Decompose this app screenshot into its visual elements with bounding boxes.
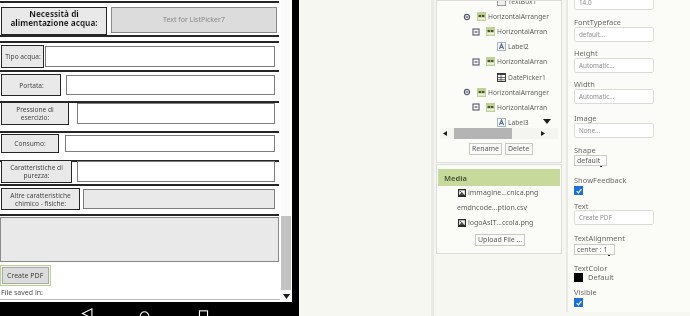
button[interactable]: Recent apps [197,308,210,316]
button[interactable] [83,189,275,209]
staticText: Width [574,79,595,89]
staticText: Media [444,173,468,183]
staticText: emdncode...ption.csv [457,203,527,213]
button[interactable]: Collapse [473,104,479,110]
staticText: HorizontalArran [497,57,548,66]
button[interactable]: Caratteristiche di purezza: [1,160,72,183]
staticText: HorizontalArranger [488,88,549,97]
button[interactable]: TextBox1 [497,0,537,9]
staticText: File saved in: [1,288,43,298]
button[interactable]: HorizontalArran [486,54,548,69]
button[interactable]: Toggle [574,186,583,195]
staticText: TextBox1 [508,0,537,6]
staticText: None... [579,126,601,135]
button[interactable]: Create PDF [574,210,654,225]
staticText: TextColor [574,263,608,273]
staticText: Text [574,201,589,211]
staticText: TextAlignment [574,233,625,243]
button[interactable]: Delete [505,143,533,155]
button[interactable]: Collapse [464,14,470,20]
button[interactable] [66,75,275,95]
button[interactable]: Upload File ... [475,234,525,246]
staticText: Automatic... [579,92,615,101]
staticText: Text for ListPicker7 [163,15,225,25]
staticText: Rename [472,144,500,154]
button[interactable]: Altre caratteristiche chimico - fisiche: [1,188,80,210]
button[interactable] [0,217,279,262]
button[interactable]: HorizontalArran [486,100,548,115]
staticText: default [577,156,601,166]
button[interactable]: Collapse [473,59,479,65]
button[interactable]: Create PDF [2,267,49,284]
staticText: Height [574,48,598,58]
button[interactable]: Tipo acqua: [1,45,44,68]
staticText: Shape [574,145,596,155]
button[interactable]: HorizontalArranger [477,9,549,24]
button[interactable]: Scroll down [281,290,291,302]
staticText: Consumo: [14,139,46,148]
button[interactable] [77,161,275,182]
staticText: Portata: [19,81,44,90]
button[interactable]: Pressione di esercizio: [1,102,69,125]
button[interactable]: default... [574,27,654,42]
button[interactable]: logoAsIT...ccola.png [458,218,534,228]
button[interactable]: Back [81,308,95,316]
button[interactable]: immagine...cnica.png [458,188,539,198]
button[interactable]: HorizontalArranger [477,85,549,100]
staticText: logoAsIT...ccola.png [468,218,534,228]
staticText: ShowFeedback [574,175,627,185]
button[interactable]: 14.0 [574,0,654,10]
button[interactable]: Default [574,272,614,282]
staticText: Caratteristiche di purezza: [10,163,63,180]
staticText: Tipo acqua: [5,52,41,61]
button[interactable]: Collapse [473,29,479,35]
button[interactable]: Consumo: [1,134,59,153]
button[interactable]: Label2 [497,39,529,54]
button[interactable]: Automatic... [574,89,654,104]
staticText: Default [588,272,614,282]
staticText: Upload File ... [478,235,523,245]
staticText: Delete [508,144,530,154]
staticText: Label2 [508,42,529,51]
staticText: immagine...cnica.png [468,188,539,198]
staticText: center : 1 [577,245,608,255]
staticText: HorizontalArranger [488,12,549,21]
staticText: Image [574,113,597,123]
button[interactable]: Collapse [464,89,470,95]
button[interactable]: Toggle [574,298,583,307]
staticText: Necessità di alimentazione acqua: [10,8,98,28]
staticText: Automatic... [579,61,615,70]
staticText: 14.0 [579,0,592,7]
button[interactable]: default [574,155,607,166]
staticText: HorizontalArran [497,27,548,36]
staticText: Create PDF [7,271,44,281]
button[interactable] [45,46,275,67]
button[interactable]: center : 1 [574,244,615,255]
button[interactable]: Necessità di alimentazione acqua: [1,7,107,35]
staticText: DatePicker1 [508,73,546,82]
button[interactable] [77,103,275,124]
button[interactable]: DatePicker1 [497,70,546,85]
button[interactable]: Home [138,308,151,316]
staticText: default... [579,30,605,39]
button[interactable]: Label3 [497,115,529,130]
button[interactable] [440,128,558,139]
button[interactable]: Automatic... [574,58,654,73]
button[interactable]: Expand [542,116,552,126]
staticText: Label3 [508,118,529,127]
button[interactable]: Text for ListPicker7 [111,7,277,33]
staticText: Create PDF [579,213,612,222]
button[interactable]: Portata: [1,74,61,96]
button[interactable]: Media [438,169,560,186]
staticText: FontTypeface [574,17,622,27]
button[interactable]: HorizontalArran [486,24,548,39]
button[interactable] [65,135,275,152]
staticText: Visible [574,287,597,297]
button[interactable]: emdncode...ption.csv [457,203,527,213]
button[interactable]: None... [574,123,654,138]
button[interactable]: Rename [469,143,502,155]
staticText: Altre caratteristiche chimico - fisiche: [10,191,71,208]
staticText: Pressione di esercizio: [16,105,54,122]
staticText: HorizontalArran [497,103,548,112]
